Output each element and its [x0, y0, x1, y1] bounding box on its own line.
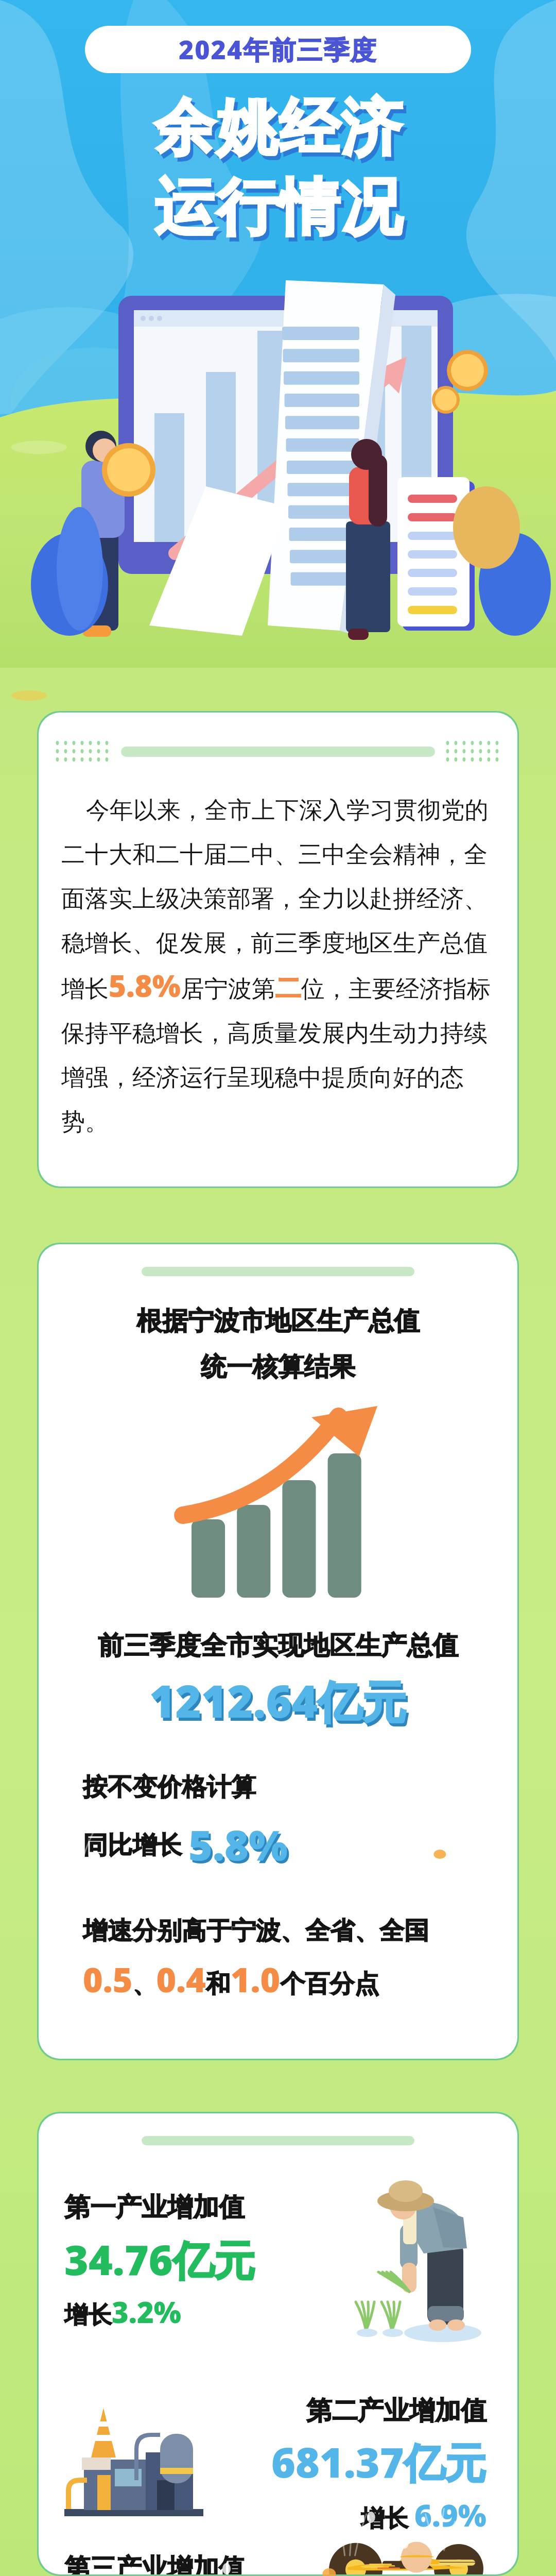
staticText: 34.76亿元 [64, 2231, 255, 2287]
staticText: 统一核算结果 [201, 1351, 355, 1383]
button[interactable]: 第一产业增加值 [39, 2113, 517, 2574]
staticText: 681.37亿元 [271, 2433, 486, 2489]
staticText: 5.8% [188, 1816, 288, 1872]
staticText: 1212.64亿元 [149, 1670, 407, 1731]
button[interactable]: 根据宁波市地区生产总值 [39, 1244, 517, 2059]
staticText: 同比增长 [83, 1827, 188, 1861]
staticText: 0.5、0.4和1.0个百分点 [83, 1956, 379, 2002]
staticText: 第三产业增加值 [64, 2552, 245, 2574]
staticText: 余姚经济 [153, 90, 403, 166]
staticText: 运行情况 [157, 174, 406, 250]
button[interactable]: 今年以来，全市上下深入学习贯彻党的二十大和二十届二中、三中全会精神，全面落实上级… [39, 713, 517, 1187]
staticText: 2024年前三季度 [179, 32, 377, 67]
staticText: 增速分别高于宁波、全省、全国 [83, 1916, 429, 1946]
staticText: 余姚经济 [157, 94, 406, 171]
staticText: 增长 6.9% [361, 2495, 486, 2535]
staticText: 增长3.2% [64, 2292, 181, 2331]
staticText: 前三季度全市实现地区生产总值 [98, 1630, 458, 1662]
staticText: 按不变价格计算 [83, 1772, 256, 1803]
other: Farmer illustration [337, 2176, 502, 2346]
staticText: 第二产业增加值 [306, 2395, 486, 2427]
staticText: 今年以来，全市上下深入学习贯彻党的二十大和二十届二中、三中全会精神，全面落实上级… [61, 793, 495, 1137]
button[interactable]: 2024年前三季度 [85, 26, 471, 73]
staticText: 运行情况 [153, 170, 403, 246]
staticText: 1212.64亿元 [151, 1673, 409, 1734]
staticText: 5.8% [190, 1819, 290, 1875]
staticText: 根据宁波市地区生产总值 [136, 1305, 420, 1337]
staticText: 第一产业增加值 [64, 2191, 245, 2224]
other: Delivery scooter illustration [311, 2552, 497, 2574]
other: Factory illustration [59, 2403, 214, 2527]
